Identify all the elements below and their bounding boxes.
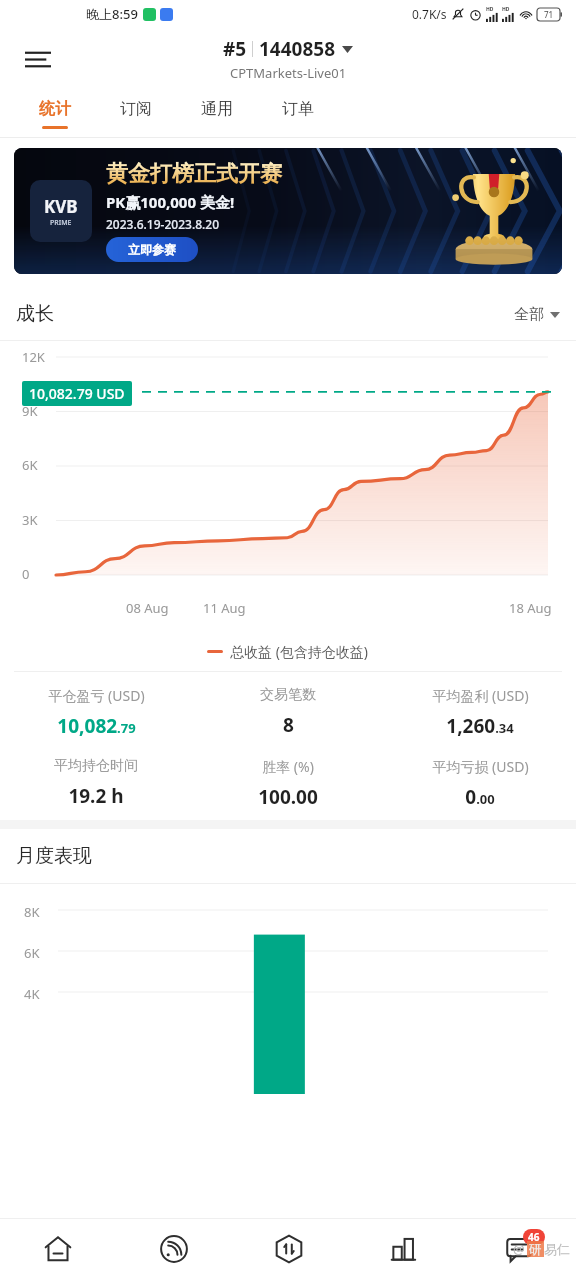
staticText: 4K: [24, 985, 40, 1003]
staticText: 成长: [16, 302, 54, 326]
button[interactable]: Trade: [261, 1221, 317, 1277]
button[interactable]: Menu: [14, 35, 62, 83]
button[interactable]: 通用: [176, 90, 257, 138]
staticText: 100.00: [258, 784, 318, 810]
staticText: 9K: [22, 402, 38, 420]
button[interactable]: 交易笔数: [192, 686, 384, 738]
staticText: 19.2 h: [68, 783, 124, 809]
staticText: 11 Aug: [203, 599, 246, 617]
staticText: HD: [486, 6, 494, 13]
staticText: 订单: [282, 99, 314, 119]
button[interactable]: 平均亏损 (USD): [384, 757, 576, 810]
staticText: 0.7K/s: [412, 6, 447, 22]
staticText: 交易笔数: [260, 686, 316, 704]
button[interactable]: 立即参赛: [106, 237, 198, 262]
staticText: 12K: [22, 348, 45, 366]
button[interactable]: Home: [30, 1221, 86, 1277]
staticText: 6K: [24, 944, 40, 962]
button[interactable]: 统计: [14, 90, 95, 138]
staticText: 08 Aug: [126, 599, 169, 617]
button[interactable]: 订单: [257, 90, 338, 138]
staticText: 0.00: [465, 784, 495, 810]
staticText: 平均亏损 (USD): [432, 757, 529, 776]
staticText: 胜率 (%): [262, 757, 314, 776]
button[interactable]: 全部: [514, 305, 560, 324]
staticText: 3K: [22, 511, 38, 529]
staticText: 8K: [24, 903, 40, 921]
button[interactable]: 平均持仓时间: [0, 757, 192, 809]
button[interactable]: Signals: [146, 1221, 202, 1277]
staticText: 立即参赛: [128, 242, 176, 257]
button[interactable]: 胜率 (%): [192, 757, 384, 810]
staticText: #5: [223, 36, 247, 62]
staticText: PRIME: [50, 218, 72, 228]
button[interactable]: Messages: [491, 1221, 547, 1277]
staticText: 平仓盈亏 (USD): [48, 686, 145, 705]
button[interactable]: 订阅: [95, 90, 176, 138]
staticText: 46: [528, 1230, 540, 1244]
staticText: 10,082.79 USD: [29, 384, 125, 403]
staticText: 月度表现: [16, 844, 92, 868]
staticText: 晚上8:59: [86, 5, 138, 23]
staticText: 易仁: [544, 1241, 570, 1257]
button[interactable]: Statistics: [376, 1221, 432, 1277]
staticText: 0: [22, 565, 30, 583]
button[interactable]: KVB: [14, 148, 562, 274]
staticText: 2023.6.19-2023.8.20: [106, 216, 220, 232]
staticText: 订阅: [120, 99, 152, 119]
staticText: CPTMarkets-Live01: [230, 64, 347, 82]
staticText: 总收益 (包含持仓收益): [230, 642, 369, 661]
staticText: 平均持仓时间: [54, 757, 138, 775]
staticText: 10,082.79: [57, 713, 136, 739]
staticText: 黄金打榜正式开赛: [106, 160, 282, 188]
staticText: 通用: [201, 99, 233, 119]
button[interactable]: 平仓盈亏 (USD): [0, 686, 192, 739]
staticText: HD: [502, 6, 510, 13]
staticText: 6K: [22, 456, 38, 474]
staticText: 71: [544, 9, 554, 20]
staticText: 研: [529, 1241, 542, 1257]
staticText: 1440858: [259, 36, 336, 62]
staticText: 全部: [514, 305, 544, 324]
staticText: PK赢100,000 美金!: [106, 192, 235, 212]
staticText: 1,260.34: [446, 713, 514, 739]
staticText: 8: [283, 712, 294, 738]
staticText: KVB: [44, 195, 78, 218]
button[interactable]: #5: [223, 36, 353, 82]
staticText: @: [513, 1240, 525, 1258]
button[interactable]: 平均盈利 (USD): [384, 686, 576, 739]
staticText: 平均盈利 (USD): [432, 686, 529, 705]
staticText: 18 Aug: [509, 599, 552, 617]
staticText: 统计: [39, 99, 71, 119]
